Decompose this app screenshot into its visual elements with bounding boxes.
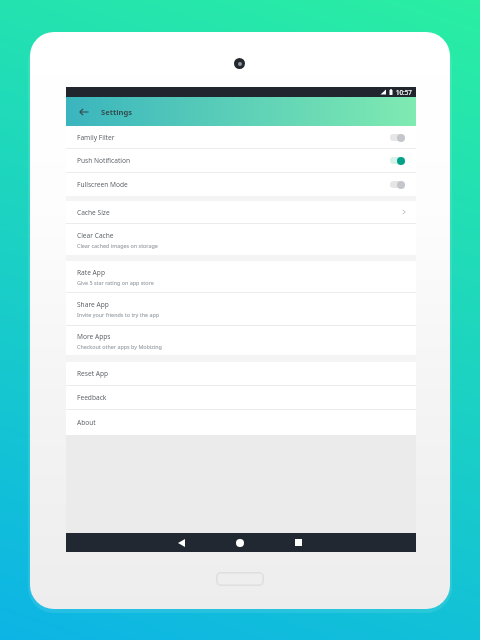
staticText: Cache Size [77, 208, 110, 217]
staticText: Rate App [77, 268, 105, 277]
button[interactable]: Home [229, 533, 251, 552]
staticText: Checkout other apps by Mobizing [77, 343, 162, 350]
staticText: Feedback [77, 393, 107, 402]
staticText: Settings [101, 107, 133, 117]
staticText: Share App [77, 300, 109, 309]
staticText: Push Notification [77, 156, 131, 165]
button[interactable]: Feedback [66, 386, 416, 409]
staticText: 10:57 [396, 88, 412, 96]
staticText: More Apps [77, 332, 111, 341]
staticText: Family Filter [77, 133, 115, 142]
button[interactable]: More Apps [66, 326, 416, 355]
button[interactable]: Share App [66, 293, 416, 325]
staticText: Clear Cache [77, 231, 114, 240]
button[interactable]: Back [170, 533, 192, 552]
button[interactable]: About [66, 410, 416, 435]
button[interactable]: Rate App [66, 261, 416, 292]
button[interactable]: Cache Size [66, 201, 416, 223]
button[interactable]: Back [76, 104, 92, 120]
button[interactable]: Fullscreen Mode [66, 173, 416, 196]
staticText: Clear cached images on storage [77, 242, 158, 249]
button[interactable]: Push Notification [66, 149, 416, 172]
staticText: Invite your friends to try the app [77, 311, 160, 318]
staticText: Give 5 star rating on app store [77, 279, 154, 286]
staticText: About [77, 418, 96, 427]
button[interactable]: Clear Cache [66, 224, 416, 255]
staticText: Fullscreen Mode [77, 180, 128, 189]
staticText: Reset App [77, 369, 109, 378]
button[interactable]: Reset App [66, 362, 416, 385]
button[interactable]: Recents [287, 533, 309, 552]
button[interactable]: Family Filter [66, 126, 416, 148]
